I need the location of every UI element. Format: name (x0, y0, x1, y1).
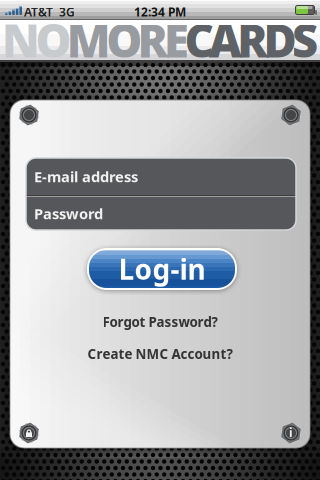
staticText: AT&T 3G (24, 4, 75, 20)
button[interactable]: Log-in (87, 248, 237, 290)
button[interactable]: Password (26, 197, 296, 230)
button[interactable]: Security (18, 422, 40, 444)
staticText: Log-in (118, 250, 205, 288)
staticText: CARDS (184, 10, 318, 70)
staticText: Forgot Password? (102, 313, 217, 331)
button[interactable]: Create NMC Account? (10, 345, 310, 363)
button[interactable]: Forgot Password? (10, 313, 310, 331)
staticText: Password (34, 204, 103, 223)
staticText: 12:34 PM (134, 4, 186, 20)
staticText: Create NMC Account? (87, 345, 232, 363)
button[interactable]: Info (280, 422, 302, 444)
staticText: NO (2, 10, 71, 70)
staticText: E-mail address (34, 167, 138, 186)
staticText: i (289, 424, 293, 440)
button[interactable]: E-mail address (26, 158, 296, 195)
staticText: MORE (67, 10, 189, 70)
